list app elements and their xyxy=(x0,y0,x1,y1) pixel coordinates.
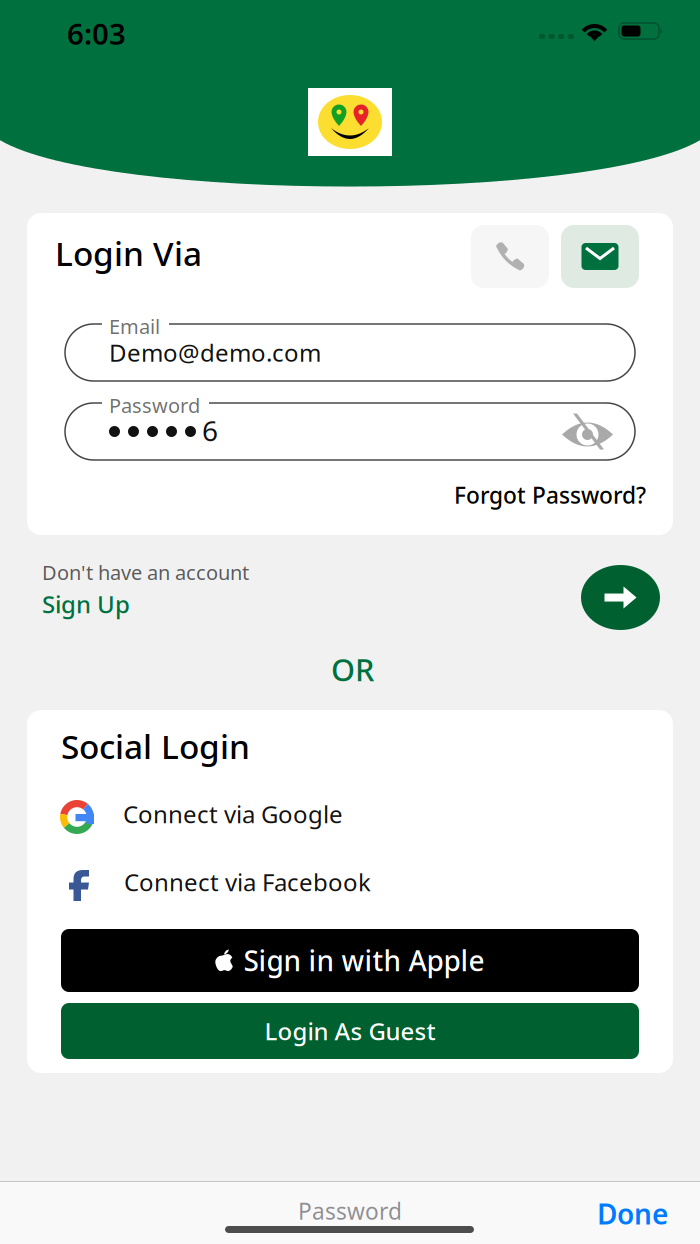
button[interactable]: Login As Guest xyxy=(61,1003,639,1059)
staticText: Email xyxy=(109,313,160,340)
button[interactable]: Connect via Google xyxy=(27,710,673,1073)
staticText: Forgot Password? xyxy=(454,480,646,510)
staticText: 6:03 xyxy=(67,14,126,53)
button[interactable]: Sign Up xyxy=(42,588,130,620)
button[interactable]: Continue xyxy=(581,565,660,630)
staticText: Connect via Google xyxy=(123,798,343,830)
button[interactable]: Login via email xyxy=(561,225,639,288)
staticText: Don't have an account xyxy=(42,559,249,586)
staticText: Done xyxy=(597,1195,668,1232)
button[interactable]: Done xyxy=(597,1195,668,1232)
staticText: Sign Up xyxy=(42,588,130,620)
staticText: Social Login xyxy=(61,724,250,768)
staticText: 6 xyxy=(202,412,218,449)
button[interactable]: Connect via Facebook xyxy=(27,710,673,1073)
staticText: Connect via Facebook xyxy=(124,866,371,898)
staticText: Login Via xyxy=(55,231,202,275)
button[interactable]: Login via phone xyxy=(471,225,549,288)
staticText: Login As Guest xyxy=(264,1015,435,1047)
staticText: OR xyxy=(331,649,374,690)
button[interactable]: Sign in with Apple xyxy=(61,929,639,992)
staticText: Sign in with Apple xyxy=(243,942,484,979)
staticText: Demo@demo.com xyxy=(109,337,321,368)
staticText: Password xyxy=(109,392,200,419)
button[interactable]: Forgot Password? xyxy=(454,480,646,510)
staticText: Password xyxy=(298,1196,402,1226)
